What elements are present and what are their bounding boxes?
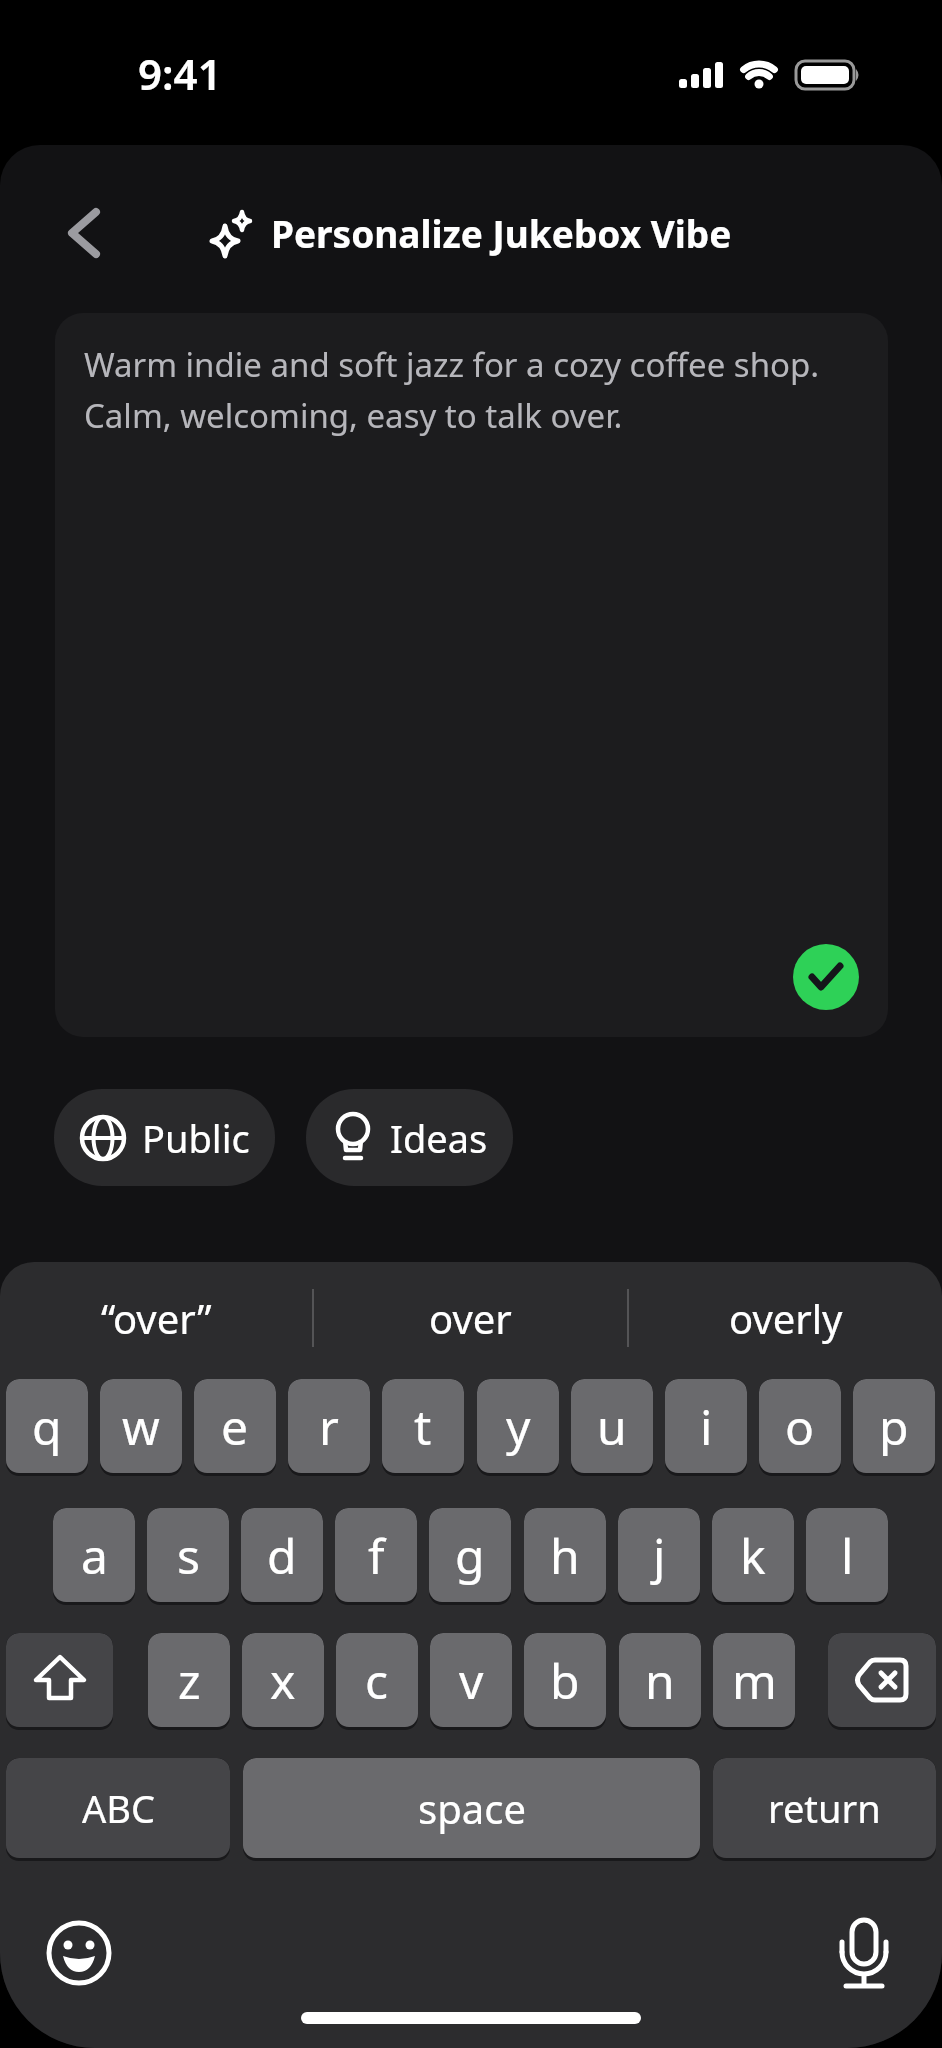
staticText: f <box>368 1523 385 1588</box>
button[interactable]: l <box>806 1508 888 1605</box>
button[interactable]: y <box>477 1379 559 1476</box>
button[interactable] <box>793 944 859 1010</box>
button[interactable]: Ideas <box>306 1089 513 1186</box>
button[interactable] <box>50 200 120 266</box>
button[interactable]: b <box>524 1633 606 1730</box>
button[interactable]: e <box>194 1379 276 1476</box>
staticText: y <box>506 1394 531 1459</box>
staticText: o <box>785 1394 815 1459</box>
button[interactable]: space <box>243 1758 700 1861</box>
button[interactable] <box>40 1914 118 1992</box>
staticText: m <box>732 1648 777 1713</box>
button[interactable]: s <box>147 1508 229 1605</box>
button[interactable]: f <box>335 1508 417 1605</box>
button[interactable] <box>6 1633 113 1730</box>
button[interactable]: w <box>100 1379 182 1476</box>
button[interactable]: g <box>429 1508 511 1605</box>
staticText: ABC <box>82 1782 155 1834</box>
staticText: i <box>700 1394 713 1459</box>
button[interactable] <box>825 1912 903 1996</box>
staticText: s <box>177 1523 200 1588</box>
staticText: q <box>32 1394 62 1459</box>
button[interactable]: u <box>571 1379 653 1476</box>
button[interactable]: return <box>713 1758 936 1861</box>
staticText: over <box>429 1291 512 1345</box>
staticText: g <box>455 1523 485 1588</box>
button[interactable]: q <box>6 1379 88 1476</box>
staticText: r <box>319 1394 339 1459</box>
staticText: k <box>740 1523 766 1588</box>
staticText: v <box>459 1648 484 1713</box>
button[interactable]: t <box>382 1379 464 1476</box>
staticText: b <box>550 1648 580 1713</box>
button[interactable]: Public <box>54 1089 275 1186</box>
button[interactable]: h <box>524 1508 606 1605</box>
staticText: p <box>879 1394 909 1459</box>
button[interactable]: c <box>336 1633 418 1730</box>
staticText: c <box>365 1648 389 1713</box>
staticText: Ideas <box>390 1112 488 1164</box>
staticText: 9:41 <box>138 45 222 102</box>
staticText: a <box>81 1523 108 1588</box>
staticText: overly <box>729 1291 843 1345</box>
staticText: “over” <box>101 1291 212 1345</box>
staticText: x <box>270 1648 296 1713</box>
staticText: h <box>550 1523 580 1588</box>
button[interactable]: p <box>853 1379 935 1476</box>
staticText: space <box>418 1781 526 1835</box>
staticText: Personalize Jukebox Vibe <box>271 208 732 258</box>
button[interactable]: j <box>618 1508 700 1605</box>
staticText: z <box>178 1648 201 1713</box>
button[interactable]: z <box>148 1633 230 1730</box>
button[interactable]: x <box>242 1633 324 1730</box>
button[interactable]: k <box>712 1508 794 1605</box>
staticText: w <box>122 1394 160 1459</box>
button[interactable]: r <box>288 1379 370 1476</box>
button[interactable]: m <box>713 1633 795 1730</box>
staticText: j <box>653 1523 666 1588</box>
button[interactable] <box>828 1633 936 1730</box>
staticText: return <box>768 1782 881 1834</box>
staticText: Warm indie and soft jazz for a cozy coff… <box>84 342 820 438</box>
staticText: e <box>221 1394 249 1459</box>
staticText: l <box>841 1523 854 1588</box>
button[interactable]: a <box>53 1508 135 1605</box>
staticText: t <box>414 1394 432 1459</box>
staticText: n <box>645 1648 675 1713</box>
staticText: Public <box>142 1112 250 1164</box>
button[interactable]: over <box>314 1272 627 1364</box>
button[interactable]: n <box>619 1633 701 1730</box>
button[interactable]: v <box>430 1633 512 1730</box>
button[interactable]: Warm indie and soft jazz for a cozy coff… <box>55 313 888 1037</box>
button[interactable]: ABC <box>6 1758 230 1861</box>
button[interactable]: d <box>241 1508 323 1605</box>
button[interactable]: i <box>665 1379 747 1476</box>
button[interactable]: “over” <box>0 1272 312 1364</box>
button[interactable]: overly <box>629 1272 942 1364</box>
staticText: d <box>267 1523 297 1588</box>
button[interactable]: o <box>759 1379 841 1476</box>
staticText: u <box>597 1394 627 1459</box>
